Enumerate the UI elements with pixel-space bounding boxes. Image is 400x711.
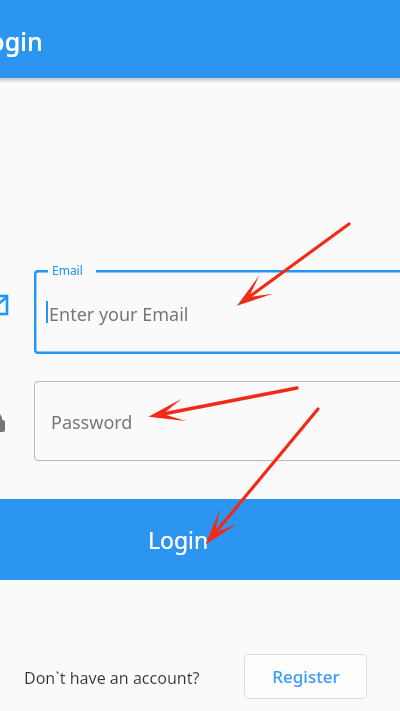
other: Email [0, 293, 8, 318]
button[interactable]: Login [0, 499, 400, 580]
staticText: Register [272, 665, 340, 688]
staticText: Don`t have an account? [24, 667, 200, 689]
button[interactable]: Password [34, 381, 400, 461]
staticText: Email [52, 262, 83, 278]
button[interactable]: Email [34, 270, 400, 354]
other: Password [0, 410, 7, 434]
staticText: Password [51, 410, 133, 435]
staticText: Enter your Email [49, 302, 189, 327]
button[interactable]: Register [244, 654, 367, 699]
staticText: Login [148, 524, 209, 555]
staticText: Login [0, 24, 43, 58]
